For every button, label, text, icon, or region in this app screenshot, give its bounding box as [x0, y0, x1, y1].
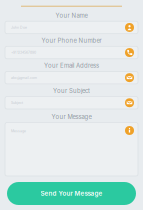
staticText: Your Name — [55, 12, 87, 19]
button[interactable]: Subject — [5, 96, 138, 109]
staticText: John Doe — [11, 25, 27, 30]
staticText: Your Phone Number — [41, 37, 101, 44]
staticText: Your Email Address — [44, 62, 99, 69]
staticText: +91 1234567890 — [11, 50, 36, 55]
staticText: abc@gmail.com — [11, 76, 37, 80]
button[interactable]: +91 1234567890 — [5, 46, 138, 59]
button[interactable]: Send Your Message — [7, 182, 136, 205]
staticText: Your Message — [51, 113, 91, 120]
staticText: Send Your Message — [40, 190, 102, 197]
staticText: Your Subject — [53, 87, 90, 94]
staticText: Subject — [11, 101, 23, 105]
button[interactable]: abc@gmail.com — [5, 71, 138, 84]
button[interactable]: Message — [5, 122, 138, 176]
button[interactable]: John Doe — [5, 21, 138, 34]
staticText: Message — [11, 129, 26, 133]
